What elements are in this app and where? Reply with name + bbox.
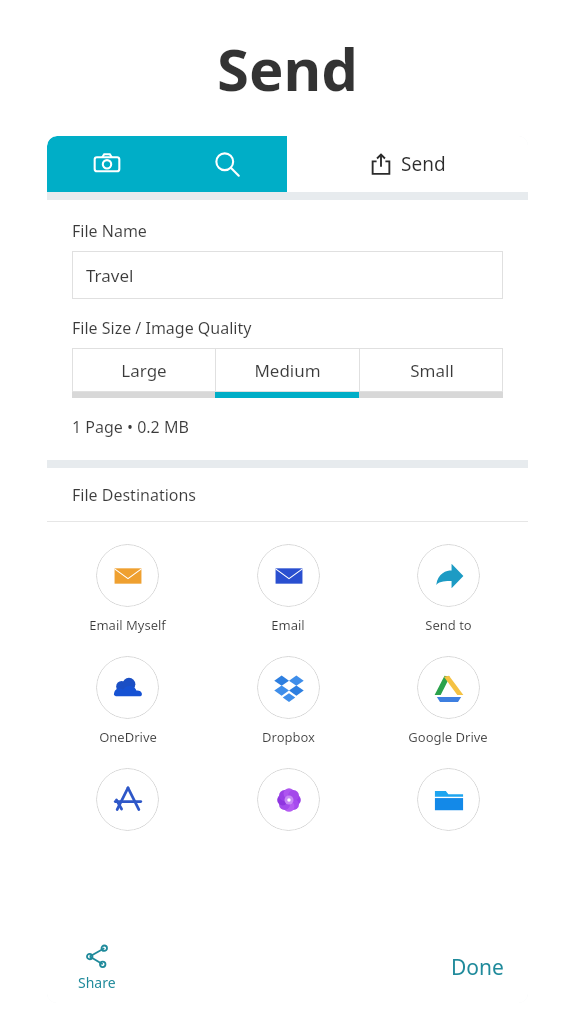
button[interactable]: Done <box>427 941 528 994</box>
button[interactable]: Email Myself <box>47 544 208 634</box>
button[interactable]: Small <box>360 348 503 392</box>
staticText: Small <box>410 359 454 382</box>
staticText: Email <box>271 616 305 634</box>
staticText: OneDrive <box>99 728 157 746</box>
button[interactable]: Send to <box>368 544 528 634</box>
button[interactable]: Medium <box>216 348 359 392</box>
button[interactable]: FLOWER <box>208 768 368 831</box>
staticText: Send <box>401 151 446 177</box>
button[interactable]: FOLDER <box>368 768 528 831</box>
staticText: Travel <box>86 264 134 287</box>
button[interactable]: Share <box>70 939 124 996</box>
staticText: Share <box>78 973 116 992</box>
button[interactable]: Google Drive <box>368 656 528 746</box>
staticText: Google Drive <box>408 728 488 746</box>
staticText: Send to <box>425 616 472 634</box>
button[interactable]: OneDrive <box>47 656 208 746</box>
staticText: Medium <box>254 359 321 382</box>
button[interactable]: Search <box>167 136 287 192</box>
button[interactable]: Dropbox <box>208 656 368 746</box>
staticText: Dropbox <box>262 728 315 746</box>
button[interactable]: Send <box>287 136 528 192</box>
staticText: Email Myself <box>89 616 166 634</box>
button[interactable]: Email <box>208 544 368 634</box>
staticText: File Destinations <box>72 484 197 506</box>
button[interactable]: Camera <box>47 136 167 192</box>
staticText: Send <box>217 29 358 108</box>
button[interactable]: Travel <box>72 251 503 299</box>
button[interactable]: APPSTORE <box>47 768 208 831</box>
staticText: File Name <box>72 220 147 242</box>
staticText: Done <box>451 953 504 982</box>
staticText: 1 Page • 0.2 MB <box>72 416 189 438</box>
button[interactable]: Large <box>72 348 215 392</box>
staticText: File Size / Image Quality <box>72 317 252 339</box>
staticText: Large <box>121 359 167 382</box>
